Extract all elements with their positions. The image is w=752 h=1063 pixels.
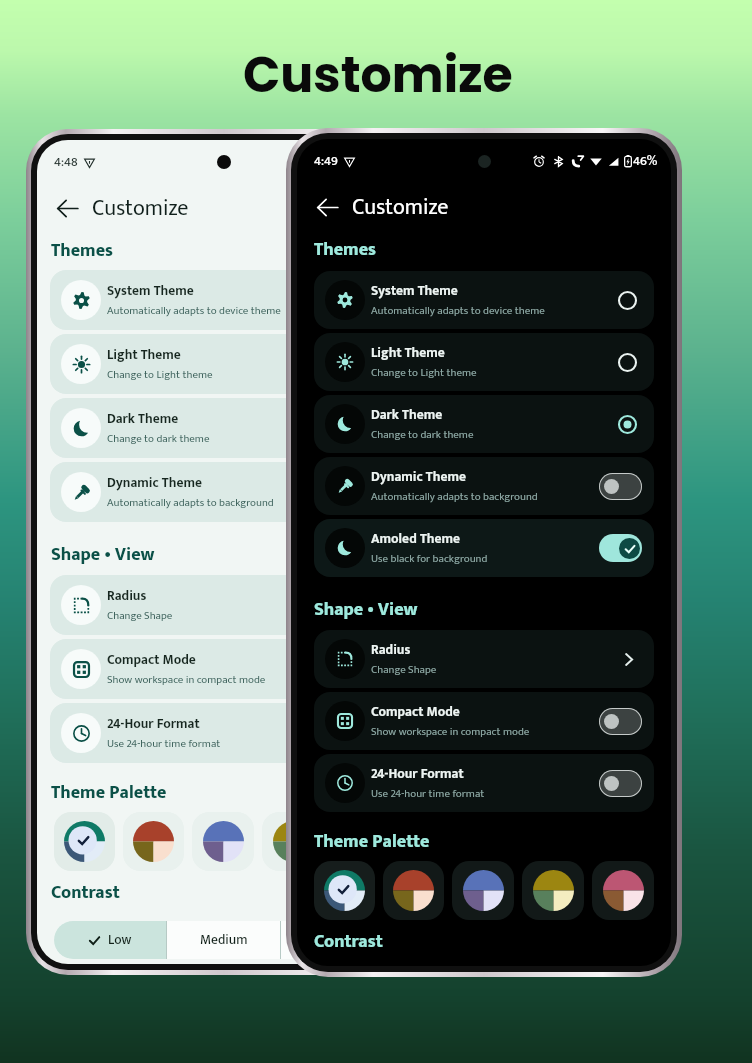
button[interactable]: System Theme xyxy=(50,270,398,330)
staticText: Customize xyxy=(92,190,189,227)
button[interactable]: Amoled Theme xyxy=(314,519,654,577)
button[interactable]: Dark Theme xyxy=(314,395,654,453)
staticText: Show workspace in compact mode xyxy=(107,671,266,689)
button[interactable]: Theme colour xyxy=(383,861,444,920)
staticText: Show workspace in compact mode xyxy=(371,723,530,741)
staticText: Theme Palette xyxy=(314,827,430,857)
staticText: Shape • View xyxy=(51,540,155,570)
staticText: 24-Hour Format xyxy=(371,763,464,785)
staticText: Medium xyxy=(200,929,248,951)
button[interactable]: Toggle, off xyxy=(599,473,642,500)
staticText: Radius xyxy=(371,639,411,661)
staticText: Change to Light theme xyxy=(107,366,213,384)
staticText: Change to dark theme xyxy=(107,430,210,448)
button[interactable]: Theme colour xyxy=(592,861,654,920)
staticText: Low xyxy=(108,929,132,951)
button[interactable]: Select option xyxy=(612,285,642,315)
button[interactable]: Compact Mode xyxy=(314,692,654,750)
staticText: Customize xyxy=(352,189,449,226)
staticText: Themes xyxy=(51,236,114,266)
button[interactable]: Toggle, on xyxy=(599,534,642,562)
button[interactable]: Selected option xyxy=(612,409,642,439)
button[interactable]: Dark Theme xyxy=(50,398,398,458)
button[interactable]: Back xyxy=(37,184,411,232)
staticText: Light Theme xyxy=(107,344,181,366)
staticText: System Theme xyxy=(371,280,458,302)
staticText: Change Shape xyxy=(371,661,437,679)
button[interactable]: Medium xyxy=(167,921,280,959)
staticText: Use 24-hour time format xyxy=(107,735,221,753)
button[interactable]: Toggle, off xyxy=(599,770,642,797)
button[interactable]: Light Theme xyxy=(50,334,398,394)
button[interactable]: Theme colour xyxy=(54,812,115,871)
staticText: Contrast xyxy=(314,927,383,957)
button[interactable]: Radius xyxy=(314,630,654,688)
button[interactable]: 24-Hour Format xyxy=(314,754,654,812)
button[interactable]: Light Theme xyxy=(314,333,654,391)
button[interactable]: System Theme xyxy=(314,271,654,329)
staticText: 4:49 xyxy=(314,150,338,172)
button[interactable]: Dynamic Theme xyxy=(314,457,654,515)
staticText: Dark Theme xyxy=(107,408,179,430)
staticText: Customize xyxy=(243,41,513,110)
button[interactable]: Open radius settings xyxy=(614,645,642,673)
staticText: Automatically adapts to device theme xyxy=(107,302,281,320)
staticText: Shape • View xyxy=(314,595,418,625)
button[interactable]: High xyxy=(281,921,394,959)
staticText: Change to dark theme xyxy=(371,426,474,444)
staticText: Contrast xyxy=(51,878,120,908)
button[interactable]: Theme colour xyxy=(192,812,254,871)
staticText: Theme Palette xyxy=(51,778,167,808)
button[interactable]: Theme colour xyxy=(262,812,324,871)
button[interactable]: Low xyxy=(54,921,166,959)
button[interactable]: Select option xyxy=(612,347,642,377)
button[interactable]: Back xyxy=(297,183,671,231)
button[interactable]: Compact Mode xyxy=(50,639,398,699)
staticText: System Theme xyxy=(107,280,194,302)
button[interactable]: Theme colour xyxy=(522,861,584,920)
staticText: Dynamic Theme xyxy=(371,466,466,488)
staticText: Change to Light theme xyxy=(371,364,477,382)
button[interactable]: Toggle, off xyxy=(599,708,642,735)
staticText: Radius xyxy=(107,585,147,607)
staticText: Dynamic Theme xyxy=(107,472,202,494)
staticText: Automatically adapts to device theme xyxy=(371,302,545,320)
staticText: Automatically adapts to background xyxy=(371,488,538,506)
staticText: Use 24-hour time format xyxy=(371,785,485,803)
staticText: Amoled Theme xyxy=(371,528,461,550)
button[interactable]: Theme colour xyxy=(314,861,375,920)
staticText: High xyxy=(324,929,352,951)
staticText: Change Shape xyxy=(107,607,173,625)
button[interactable]: Radius xyxy=(50,575,398,635)
staticText: Use black for background xyxy=(371,550,488,568)
staticText: 4:48 xyxy=(54,151,78,173)
staticText: Compact Mode xyxy=(107,649,196,671)
button[interactable]: Back xyxy=(52,193,82,223)
staticText: Automatically adapts to background xyxy=(107,494,274,512)
staticText: Dark Theme xyxy=(371,404,443,426)
staticText: 46% xyxy=(633,150,658,172)
button[interactable]: Theme colour xyxy=(123,812,184,871)
button[interactable]: 24-Hour Format xyxy=(50,703,398,763)
button[interactable]: Theme colour xyxy=(452,861,514,920)
staticText: 24-Hour Format xyxy=(107,713,200,735)
staticText: Compact Mode xyxy=(371,701,460,723)
staticText: Light Theme xyxy=(371,342,445,364)
button[interactable]: Back xyxy=(312,192,342,222)
button[interactable]: Dynamic Theme xyxy=(50,462,398,522)
button[interactable]: Theme colour xyxy=(332,812,394,871)
staticText: Themes xyxy=(314,235,377,265)
